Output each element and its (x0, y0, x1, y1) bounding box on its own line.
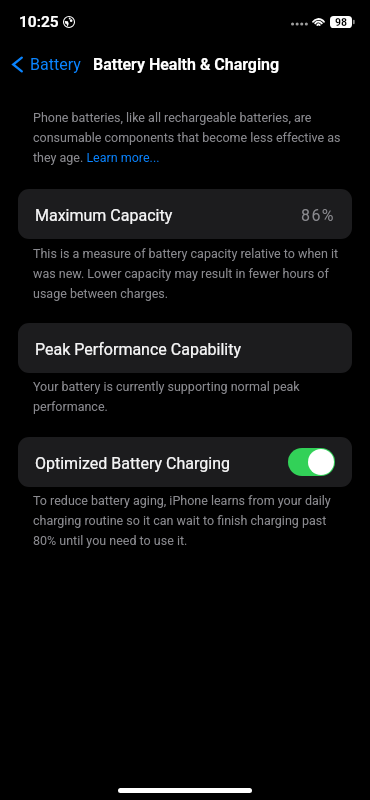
staticText: This is a measure of battery capacity re… (33, 242, 342, 302)
staticText: Your battery is currently supporting nor… (33, 375, 342, 415)
staticText: Maximum Capacity (35, 206, 173, 225)
button[interactable]: Maximum Capacity (18, 189, 352, 239)
staticText: 98 (335, 16, 348, 28)
staticText: Battery Health & Charging (93, 55, 280, 74)
staticText: Battery (30, 55, 81, 74)
staticText: Phone batteries, like all rechargeable b… (33, 106, 342, 166)
staticText: Optimized Battery Charging (35, 454, 230, 473)
staticText: 86% (301, 206, 335, 225)
staticText: Peak Performance Capability (35, 340, 242, 359)
button[interactable]: Optimized Battery Charging (18, 437, 352, 487)
button[interactable]: Optimized Battery Charging toggle, on (288, 448, 335, 476)
button[interactable]: Battery (0, 50, 89, 79)
staticText: 10:25 (19, 13, 59, 31)
button[interactable]: Peak Performance Capability (18, 323, 352, 373)
staticText: To reduce battery aging, iPhone learns f… (33, 489, 342, 549)
